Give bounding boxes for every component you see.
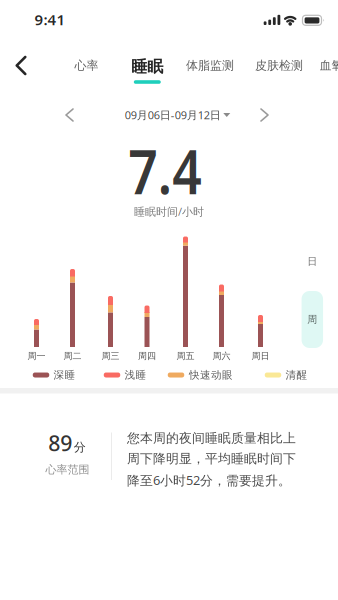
button[interactable]: 心率 — [74, 58, 98, 73]
button[interactable]: 体脂监测 — [186, 58, 234, 73]
button[interactable]: 睡眠 — [131, 57, 163, 84]
staticText: 睡眠 — [131, 57, 163, 77]
button[interactable]: 皮肤检测 — [255, 58, 303, 73]
staticText: 快速动眼 — [189, 368, 233, 382]
staticText: 分 — [74, 440, 86, 455]
staticText: 周日 — [251, 350, 269, 362]
staticText: 睡眠时间/小时 — [134, 204, 204, 219]
button[interactable]: Back — [8, 48, 34, 83]
button[interactable]: Next week — [254, 102, 275, 128]
staticText: 周六 — [212, 350, 230, 362]
staticText: 周一 — [27, 350, 45, 362]
staticText: 周四 — [138, 350, 156, 362]
button[interactable]: 日 — [301, 248, 323, 274]
staticText: 7.4 — [121, 129, 208, 212]
staticText: 您本周的夜间睡眠质量相比上 — [127, 430, 296, 446]
staticText: 心率 — [74, 58, 98, 73]
staticText: 日 — [307, 255, 317, 268]
staticText: 皮肤检测 — [255, 58, 303, 73]
button[interactable]: Previous week — [59, 102, 80, 128]
button[interactable]: 周 — [302, 291, 323, 348]
staticText: 清醒 — [285, 368, 307, 382]
staticText: 浅睡 — [124, 368, 146, 382]
staticText: 89 — [48, 428, 72, 457]
staticText: 周五 — [176, 350, 194, 362]
staticText: 周三 — [101, 350, 119, 362]
staticText: 9:41 — [34, 9, 65, 30]
button[interactable]: 血氧 — [319, 58, 338, 73]
staticText: 体脂监测 — [186, 58, 234, 73]
staticText: 降至6小时52分，需要提升。 — [127, 471, 291, 489]
staticText: 心率范围 — [45, 463, 89, 476]
staticText: 09月06日-09月12日 — [125, 107, 221, 122]
staticText: 周下降明显，平均睡眠时间下 — [127, 451, 296, 467]
staticText: 深睡 — [53, 368, 75, 382]
staticText: 周二 — [63, 350, 81, 362]
staticText: 周 — [307, 313, 317, 326]
button[interactable]: 09月06日-09月12日 — [125, 107, 230, 122]
staticText: 血氧 — [319, 58, 338, 73]
